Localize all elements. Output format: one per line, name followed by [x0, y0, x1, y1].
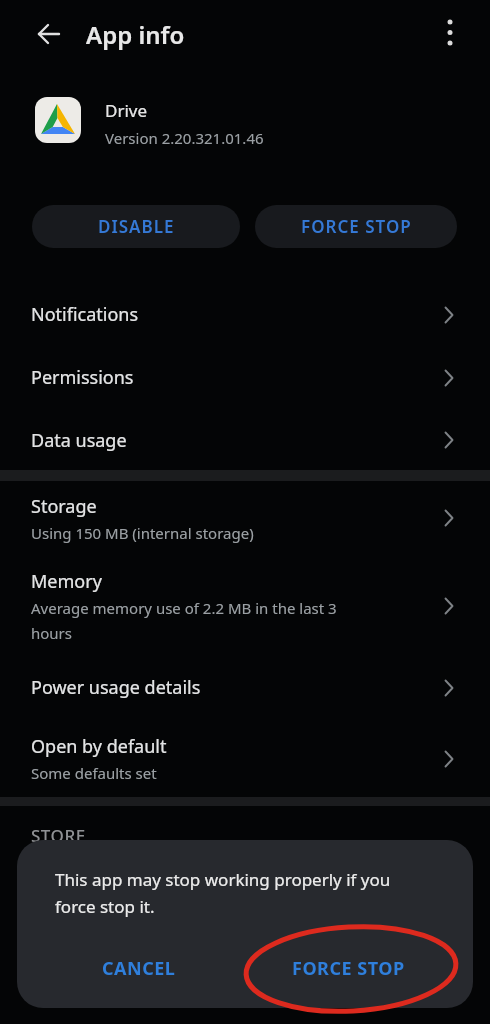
button[interactable]: Memory — [0, 556, 490, 655]
staticText: Memory — [31, 569, 102, 594]
staticText: Version 2.20.321.01.46 — [105, 128, 264, 148]
staticText: Using 150 MB (internal storage) — [31, 523, 431, 543]
button[interactable] — [36, 21, 62, 47]
staticText: CANCEL — [102, 956, 176, 981]
staticText: Open by default — [31, 734, 167, 759]
staticText: Power usage details — [31, 675, 201, 700]
button[interactable]: Notifications — [0, 283, 490, 346]
button[interactable]: Power usage details — [0, 655, 490, 720]
button[interactable]: Storage — [0, 480, 490, 556]
staticText: STORE — [31, 824, 86, 847]
button[interactable]: Permissions — [0, 346, 490, 409]
staticText: FORCE STOP — [301, 215, 412, 238]
staticText: Storage — [31, 494, 97, 519]
staticText: Drive — [105, 99, 148, 122]
button[interactable] — [438, 12, 462, 54]
staticText: FORCE STOP — [292, 956, 405, 981]
button[interactable]: Data usage — [0, 409, 490, 471]
staticText: Notifications — [31, 302, 139, 327]
staticText: Average memory use of 2.2 MB in the last… — [31, 598, 411, 643]
staticText: This app may stop working properly if yo… — [55, 868, 451, 918]
staticText: Data usage — [31, 428, 127, 453]
button[interactable]: CANCEL — [69, 942, 209, 994]
staticText: App info — [86, 18, 185, 51]
staticText: Some defaults set — [31, 763, 431, 783]
button[interactable]: FORCE STOP — [268, 942, 428, 994]
button[interactable]: Open by default — [0, 720, 490, 797]
staticText: Permissions — [31, 365, 134, 390]
button[interactable]: FORCE STOP — [255, 205, 457, 248]
button[interactable]: DISABLE — [32, 205, 240, 248]
staticText: DISABLE — [98, 215, 175, 238]
